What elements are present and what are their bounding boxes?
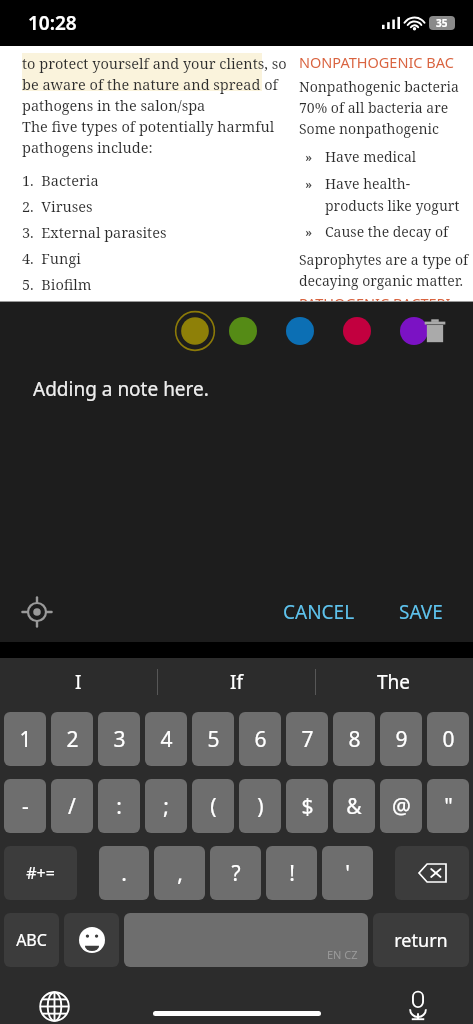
staticText: 8 bbox=[348, 725, 361, 754]
staticText: Adding a note here. bbox=[33, 376, 209, 402]
staticText: / bbox=[68, 792, 76, 821]
staticText: to protect yourself and your clients, so bbox=[22, 53, 287, 73]
button[interactable]: 1 bbox=[4, 712, 46, 766]
button[interactable]: 9 bbox=[380, 712, 422, 766]
button[interactable]: 7 bbox=[286, 712, 328, 766]
staticText: » bbox=[305, 223, 325, 241]
staticText: I bbox=[75, 669, 82, 695]
staticText: 6 bbox=[254, 725, 267, 754]
button[interactable]: If bbox=[157, 658, 315, 706]
button[interactable]: ABC bbox=[4, 913, 59, 967]
staticText: pathogens in the salon/spa environment. bbox=[22, 95, 288, 115]
button[interactable]: @ bbox=[380, 779, 422, 833]
button[interactable]: Backspace bbox=[395, 846, 469, 900]
staticText: 2 bbox=[66, 725, 79, 754]
button[interactable]: return bbox=[373, 913, 469, 967]
staticText: If bbox=[230, 669, 243, 695]
staticText: » bbox=[305, 148, 325, 166]
button[interactable]: " bbox=[427, 779, 469, 833]
staticText: 2. Viruses bbox=[22, 196, 93, 216]
button[interactable]: Purple colour bbox=[396, 313, 432, 349]
staticText: 4 bbox=[160, 725, 173, 754]
button[interactable]: Blue colour bbox=[282, 313, 318, 349]
staticText: $ bbox=[301, 792, 314, 821]
button[interactable]: Dictate bbox=[397, 989, 439, 1024]
staticText: ABC bbox=[16, 929, 47, 951]
button[interactable]: : bbox=[98, 779, 140, 833]
button[interactable]: / bbox=[51, 779, 93, 833]
button[interactable]: Emoji bbox=[64, 913, 119, 967]
button[interactable]: . bbox=[99, 846, 149, 900]
button[interactable]: Change keyboard language bbox=[33, 989, 75, 1024]
button[interactable]: - bbox=[4, 779, 46, 833]
button[interactable]: $ bbox=[286, 779, 328, 833]
staticText: ) bbox=[257, 792, 264, 821]
button[interactable]: SAVE bbox=[391, 591, 451, 633]
button[interactable]: ) bbox=[239, 779, 281, 833]
button[interactable]: 2 bbox=[51, 712, 93, 766]
button[interactable]: 6 bbox=[239, 712, 281, 766]
staticText: 4. Fungi bbox=[22, 248, 81, 268]
button[interactable]: I bbox=[0, 658, 157, 706]
staticText: 9 bbox=[395, 725, 408, 754]
staticText: . bbox=[121, 859, 127, 888]
staticText: 5 bbox=[207, 725, 220, 754]
button[interactable]: ' bbox=[322, 846, 373, 900]
staticText: 35 bbox=[436, 16, 448, 30]
button[interactable]: ? bbox=[210, 846, 261, 900]
button[interactable]: ( bbox=[192, 779, 234, 833]
button[interactable]: 5 bbox=[192, 712, 234, 766]
button[interactable]: 4 bbox=[145, 712, 187, 766]
staticText: ; bbox=[163, 792, 169, 821]
staticText: ? bbox=[231, 859, 241, 888]
staticText: 3. External parasites bbox=[22, 222, 167, 242]
button[interactable]: Locate bbox=[16, 591, 58, 633]
staticText: 1. Bacteria bbox=[22, 170, 99, 190]
staticText: The bbox=[377, 669, 411, 695]
staticText: ' bbox=[345, 859, 350, 888]
staticText: Have health-enhancing bbox=[325, 174, 473, 193]
button[interactable]: #+= bbox=[4, 846, 77, 900]
staticText: 10:28 bbox=[28, 10, 77, 36]
staticText: SAVE bbox=[399, 599, 443, 625]
staticText: 0 bbox=[442, 725, 455, 754]
button[interactable]: & bbox=[333, 779, 375, 833]
button[interactable]: CANCEL bbox=[275, 591, 363, 633]
staticText: 7 bbox=[301, 725, 314, 754]
staticText: ( bbox=[210, 792, 217, 821]
staticText: NONPATHOGENIC BAC bbox=[299, 52, 454, 72]
button[interactable]: 8 bbox=[333, 712, 375, 766]
staticText: Nonpathogenic bacteria ar bbox=[299, 77, 473, 96]
staticText: 70% of all bacteria are nor bbox=[299, 98, 473, 117]
staticText: 1 bbox=[19, 725, 32, 754]
staticText: " bbox=[444, 792, 453, 821]
staticText: return bbox=[394, 928, 448, 953]
staticText: products like yogurt bbox=[325, 196, 460, 215]
staticText: CANCEL bbox=[283, 599, 355, 625]
staticText: be aware of the nature and spread of bbox=[22, 74, 278, 94]
staticText: - bbox=[22, 792, 29, 821]
staticText: pathogens include: bbox=[22, 137, 153, 157]
button[interactable]: Red colour bbox=[339, 313, 375, 349]
button[interactable]: Green colour bbox=[225, 313, 261, 349]
button[interactable]: ! bbox=[266, 846, 317, 900]
staticText: #+= bbox=[26, 862, 55, 884]
staticText: : bbox=[116, 792, 122, 821]
staticText: , bbox=[177, 859, 183, 888]
button[interactable]: , bbox=[154, 846, 205, 900]
button[interactable]: The bbox=[315, 658, 473, 706]
button[interactable]: Space bbox=[124, 913, 368, 967]
staticText: EN CZ bbox=[327, 947, 358, 962]
staticText: » bbox=[305, 175, 325, 193]
staticText: 5. Biofilm bbox=[22, 274, 92, 294]
button[interactable]: Gold colour, selected bbox=[173, 309, 217, 353]
staticText: ! bbox=[289, 859, 295, 888]
staticText: decaying organic matter. bbox=[299, 271, 464, 290]
button[interactable]: 3 bbox=[98, 712, 140, 766]
staticText: The five types of potentially harmful bbox=[22, 116, 275, 136]
button[interactable]: 0 bbox=[427, 712, 469, 766]
button[interactable]: Delete note bbox=[415, 311, 455, 351]
staticText: & bbox=[346, 792, 362, 821]
button[interactable]: ; bbox=[145, 779, 187, 833]
staticText: Cause the decay of refu bbox=[325, 222, 473, 241]
